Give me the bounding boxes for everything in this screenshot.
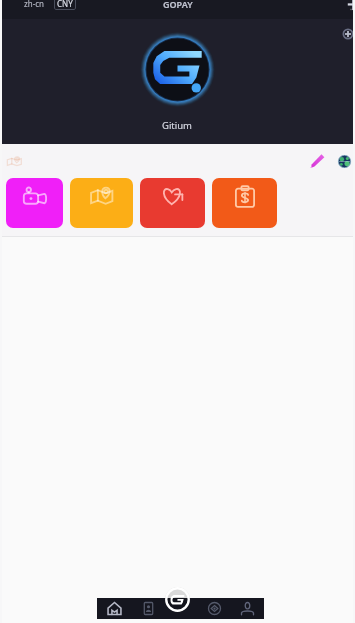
staticText: zh-cn [24,0,45,9]
staticText: GOPAY [163,0,193,10]
button[interactable]: Saved [131,598,165,619]
button[interactable] [70,178,133,228]
button[interactable]: CNY [54,0,76,10]
button[interactable] [6,178,63,228]
button[interactable]: Profile [231,598,264,619]
button[interactable]: Scan [346,0,355,12]
button[interactable]: Home [97,598,131,619]
button[interactable]: Discover [198,598,231,619]
staticText: Gitium [162,119,193,132]
button[interactable]: Edit [309,153,325,169]
button[interactable]: Map [6,155,23,169]
staticText: CNY [57,0,73,9]
button[interactable]: Gitium [163,587,192,612]
button[interactable] [212,178,277,228]
button[interactable] [140,178,205,228]
button[interactable]: Language [338,155,351,168]
button[interactable]: Add [340,26,355,42]
